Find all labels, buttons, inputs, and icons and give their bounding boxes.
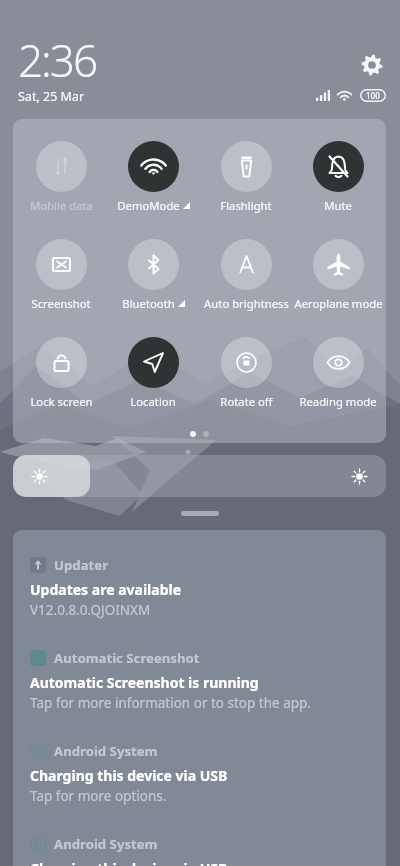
button[interactable]: Mobile data <box>16 141 106 213</box>
button[interactable]: Bluetooth <box>108 239 198 311</box>
staticText: 100 <box>366 90 380 101</box>
staticText: Aeroplane mode <box>294 296 383 311</box>
button[interactable]: DemoMode <box>108 141 198 213</box>
staticText: Automatic Screenshot is running <box>30 673 259 692</box>
button[interactable]: Android System <box>13 809 386 866</box>
button[interactable]: Rotate off <box>201 337 291 409</box>
staticText: Tap for more options. <box>30 787 167 805</box>
staticText: Charging this device via USB <box>30 859 228 866</box>
staticText: V12.0.8.0.QJOINXM <box>30 601 151 619</box>
button[interactable]: Reading mode <box>293 337 383 409</box>
button[interactable]: Android System <box>13 716 386 809</box>
staticText: Reading mode <box>299 394 377 409</box>
button[interactable]: Auto brightness <box>201 239 291 311</box>
staticText: Android System <box>54 742 158 760</box>
staticText: DemoMode <box>117 198 180 213</box>
staticText: Mute <box>324 198 352 213</box>
staticText: Bluetooth <box>122 296 175 311</box>
staticText: Mobile data <box>30 198 93 213</box>
staticText: Updates are available <box>30 580 182 599</box>
button[interactable]: Lock screen <box>16 337 106 409</box>
staticText: Screenshot <box>31 296 91 311</box>
staticText: Charging this device via USB <box>30 766 228 785</box>
button[interactable] <box>13 455 386 497</box>
staticText: Android System <box>54 835 158 853</box>
staticText: Flashlight <box>220 198 272 213</box>
staticText: Tap for more information or to stop the … <box>30 694 311 712</box>
button[interactable]: Screenshot <box>16 239 106 311</box>
staticText: Automatic Screenshot <box>54 649 200 667</box>
staticText: 2:36 <box>18 30 97 90</box>
staticText: Lock screen <box>30 394 93 409</box>
button[interactable]: Aeroplane mode <box>293 239 383 311</box>
staticText: Sat, 25 Mar <box>18 88 85 105</box>
button[interactable]: Flashlight <box>201 141 291 213</box>
staticText: Updater <box>54 556 109 574</box>
button[interactable]: Settings <box>359 52 385 78</box>
staticText: Auto brightness <box>204 296 289 311</box>
staticText: Location <box>130 394 176 409</box>
button[interactable]: Updater <box>13 530 386 623</box>
button[interactable]: Automatic Screenshot <box>13 623 386 716</box>
button[interactable]: Mute <box>293 141 383 213</box>
staticText: Rotate off <box>220 394 273 409</box>
button[interactable]: Location <box>108 337 198 409</box>
